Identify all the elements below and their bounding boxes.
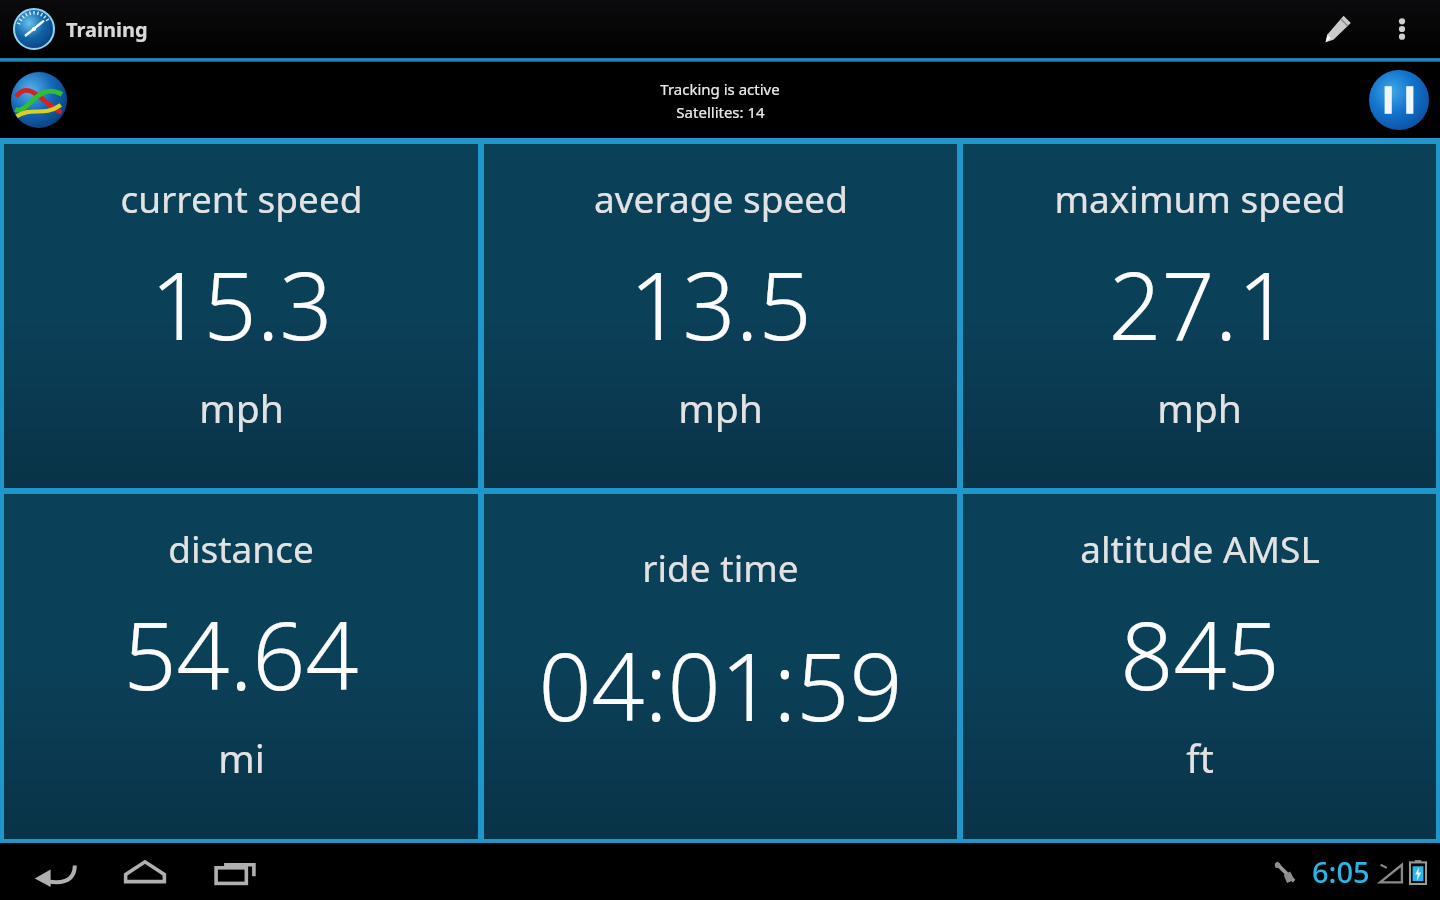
button[interactable]: Recent apps [190, 846, 280, 898]
staticText: 54.64 [123, 591, 359, 718]
staticText: mph [199, 381, 284, 434]
button[interactable]: Back [10, 846, 100, 898]
button[interactable]: Edit [1308, 0, 1366, 58]
staticText: 27.1 [1108, 241, 1291, 368]
button[interactable]: Home [100, 846, 190, 898]
staticText: altitude AMSL [1080, 523, 1320, 573]
button[interactable]: Tracking profile [8, 69, 70, 131]
button[interactable]: More options [1376, 3, 1428, 55]
staticText: maximum speed [1054, 173, 1346, 223]
staticText: Satellites: 14 [676, 102, 765, 122]
staticText: mi [218, 731, 265, 784]
staticText: current speed [120, 173, 363, 223]
staticText: 13.5 [629, 241, 812, 368]
staticText: ride time [642, 542, 799, 592]
staticText: 04:01:59 [538, 622, 903, 749]
staticText: 845 [1120, 591, 1280, 718]
button[interactable]: altitude AMSL [963, 494, 1436, 839]
staticText: Tracking is active [660, 79, 780, 99]
staticText: mph [1157, 381, 1242, 434]
staticText: distance [168, 523, 314, 573]
staticText: mph [678, 381, 763, 434]
button[interactable]: Pause tracking [1366, 67, 1432, 133]
button[interactable]: current speed [4, 144, 478, 488]
button[interactable]: App icon [12, 7, 56, 51]
staticText: Training [66, 16, 148, 43]
staticText: 15.3 [150, 241, 333, 368]
staticText: 6:05 [1312, 852, 1370, 891]
button[interactable]: distance [4, 494, 478, 839]
staticText: ft [1186, 731, 1214, 784]
button[interactable]: average speed [484, 144, 957, 488]
button[interactable]: maximum speed [963, 144, 1436, 488]
button[interactable]: ride time [484, 494, 957, 839]
staticText: average speed [594, 173, 848, 223]
